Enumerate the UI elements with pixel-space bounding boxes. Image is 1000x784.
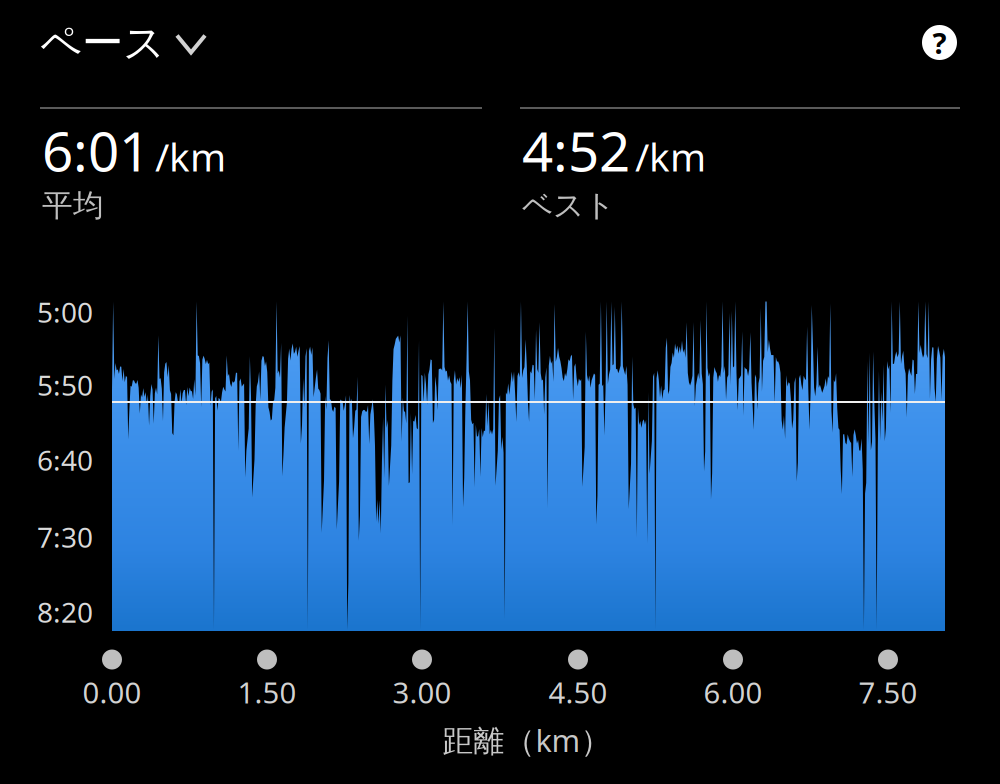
staticText: 1.50 (237, 672, 296, 711)
staticText: 8:20 (37, 593, 93, 631)
staticText: 7.50 (858, 672, 917, 711)
staticText: 0.00 (82, 672, 141, 711)
staticText: 平均 (42, 187, 104, 224)
staticText: /km (635, 131, 706, 182)
staticText: 4.50 (548, 672, 607, 711)
staticText: 6:40 (37, 441, 93, 479)
staticText: ? (932, 23, 946, 62)
staticText: 距離（km） (442, 720, 611, 760)
staticText: 5:50 (37, 366, 93, 404)
staticText: ベスト (522, 187, 615, 224)
staticText: 7:30 (37, 518, 93, 556)
staticText: 5:00 (37, 293, 93, 331)
staticText: ペース (40, 18, 165, 68)
button[interactable]: ペース (40, 18, 207, 68)
staticText: /km (155, 131, 226, 182)
staticText: 6.00 (703, 672, 762, 711)
staticText: 3.00 (392, 672, 451, 711)
button[interactable]: ヘルプ (922, 25, 957, 60)
staticText: 4:52 (522, 114, 630, 187)
staticText: 6:01 (42, 114, 150, 187)
